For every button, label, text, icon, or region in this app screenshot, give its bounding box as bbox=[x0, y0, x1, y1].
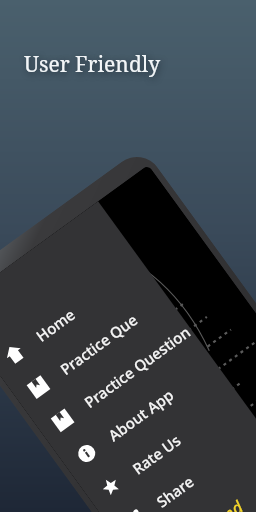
staticText: Home bbox=[32, 304, 79, 346]
staticText: Designed and Develped : bbox=[149, 458, 256, 512]
staticText: Practice Que bbox=[56, 309, 141, 379]
button[interactable]: Practice Question bbox=[31, 311, 202, 451]
button[interactable]: Rate Us bbox=[79, 377, 250, 512]
button[interactable]: Practice Que bbox=[7, 278, 178, 418]
button[interactable]: About App bbox=[55, 344, 226, 484]
button[interactable]: Home bbox=[0, 245, 154, 385]
staticText: User Friendly bbox=[24, 50, 161, 79]
staticText: Share bbox=[152, 471, 197, 512]
button[interactable]: Share bbox=[103, 411, 256, 512]
staticText: Practice Question bbox=[80, 321, 195, 412]
staticText: Rate Us bbox=[128, 430, 185, 478]
staticText: About App bbox=[104, 384, 177, 445]
